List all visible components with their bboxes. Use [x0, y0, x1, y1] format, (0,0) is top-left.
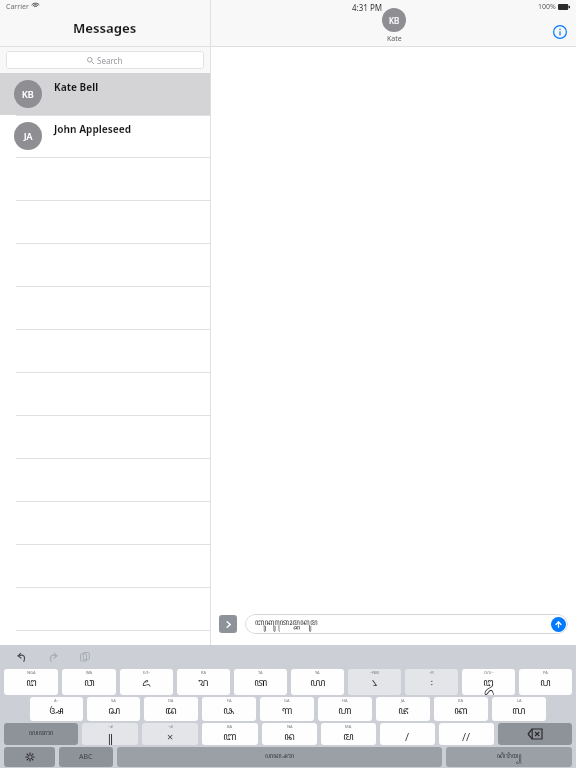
staticText: SA — [111, 698, 116, 703]
button[interactable]: KB — [382, 8, 406, 44]
staticText: Messages — [73, 19, 137, 37]
staticText: ꦲꦏ꧀ꦱꦫ — [265, 750, 295, 764]
staticText: MA — [345, 724, 352, 729]
button[interactable]: ~NM — [348, 669, 401, 695]
staticText: HA — [342, 698, 348, 703]
button[interactable]: WA — [62, 669, 116, 695]
button[interactable]: LA — [492, 697, 546, 721]
staticText: ꦪ — [310, 674, 326, 695]
staticText: ~# — [108, 724, 113, 729]
staticText: GA — [284, 698, 290, 703]
staticText: ꧈ — [372, 674, 378, 695]
staticText: ꦄ — [49, 702, 64, 721]
staticText: TA — [258, 670, 263, 675]
staticText: PA — [543, 670, 548, 675]
staticText: WA — [86, 670, 93, 675]
button[interactable]: PA — [519, 669, 572, 695]
button[interactable]: ꦲꦏ꧀ꦱꦫ — [117, 747, 442, 767]
button[interactable]: HA — [318, 697, 372, 721]
button[interactable]: ABC — [59, 747, 113, 767]
button[interactable]: // — [439, 723, 494, 745]
button[interactable]: JA — [376, 697, 430, 721]
button[interactable]: E/I~ — [120, 669, 173, 695]
button[interactable]: / — [380, 723, 435, 745]
staticText: DA — [168, 698, 174, 703]
button[interactable]: FA — [202, 697, 256, 721]
staticText: RA — [201, 670, 207, 675]
staticText: O/U~ — [484, 670, 494, 675]
button[interactable]: GA — [260, 697, 314, 721]
button[interactable]: NGA — [4, 669, 58, 695]
button[interactable]: Backspace — [498, 723, 572, 745]
staticText: // — [462, 729, 471, 744]
button[interactable]: More apps — [219, 615, 237, 633]
button[interactable]: BA — [202, 723, 258, 745]
staticText: ꦮ — [84, 674, 95, 695]
button[interactable]: Undo — [12, 648, 30, 666]
button[interactable]: JA — [0, 115, 210, 157]
staticText: ꦥ — [540, 674, 551, 695]
staticText: ꧋ — [108, 728, 113, 745]
button[interactable]: KA — [434, 697, 488, 721]
staticText: YA — [315, 670, 320, 675]
staticText: ꦱ — [108, 702, 120, 721]
button[interactable]: Paste — [76, 648, 94, 666]
button[interactable]: Redo — [44, 648, 62, 666]
staticText: John Appleseed — [54, 122, 131, 136]
staticText: ꦗ — [398, 702, 409, 721]
button[interactable]: TA — [234, 669, 287, 695]
staticText: A~ — [54, 698, 59, 703]
button[interactable]: DA — [144, 697, 198, 721]
staticText: Kate Bell — [54, 80, 99, 94]
button[interactable]: Details — [552, 24, 568, 40]
staticText: ABC — [79, 752, 93, 762]
staticText: Kate — [387, 34, 402, 44]
button[interactable]: ꦪꦠꦫ — [4, 723, 78, 745]
button[interactable]: ~R — [405, 669, 458, 695]
button[interactable]: RA — [177, 669, 230, 695]
staticText: ꦌ — [142, 674, 151, 695]
staticText: ꦏꦶꦫꦶꦩ꧀ — [497, 750, 522, 764]
staticText: KB — [389, 15, 400, 26]
staticText: / — [405, 729, 410, 744]
staticText: JA — [401, 698, 405, 703]
staticText: ꦫ — [198, 674, 209, 695]
staticText: JA — [24, 130, 33, 142]
button[interactable]: KB — [0, 73, 210, 115]
staticText: 100% — [538, 2, 556, 12]
staticText: ꦈ — [483, 674, 494, 695]
button[interactable]: MA — [321, 723, 376, 745]
button[interactable]: ꦧꦸꦏꦸꦠꦺꦴꦩ꧀ꦧꦏꦸꦩ — [245, 614, 568, 634]
button[interactable]: SA — [87, 697, 140, 721]
button[interactable]: ꦏꦶꦫꦶꦩ꧀ — [446, 747, 572, 767]
button[interactable]: ~# — [82, 723, 138, 745]
staticText: NGA — [27, 670, 36, 675]
staticText: Search — [97, 55, 123, 66]
staticText: ꦲ — [338, 702, 352, 721]
staticText: ~NM — [370, 670, 379, 675]
staticText: BA — [227, 724, 233, 729]
staticText: ꦧ — [223, 728, 237, 745]
staticText: FA — [227, 698, 232, 703]
button[interactable]: ~# — [142, 723, 198, 745]
button[interactable]: O/U~ — [462, 669, 515, 695]
button[interactable]: YA — [291, 669, 344, 695]
button[interactable]: Keyboard settings — [4, 747, 55, 767]
button[interactable]: Search — [6, 51, 204, 69]
staticText: ꦔ — [26, 674, 37, 695]
staticText: × — [167, 729, 174, 744]
staticText: LA — [517, 698, 522, 703]
staticText: Carrier — [6, 2, 29, 12]
staticText: KA — [458, 698, 464, 703]
button[interactable]: Send — [551, 617, 566, 632]
staticText: ꦪꦠꦫ — [29, 727, 54, 741]
staticText: 4:31 PM — [352, 2, 383, 13]
button[interactable]: A~ — [30, 697, 83, 721]
staticText: ꦢ — [165, 702, 177, 721]
staticText: ꦏ — [454, 702, 468, 721]
staticText: E/I~ — [143, 670, 151, 675]
staticText: ꦩ — [343, 728, 354, 745]
staticText: ꦤ — [284, 728, 295, 745]
button[interactable]: NA — [262, 723, 317, 745]
staticText: ꦭ — [512, 702, 526, 721]
